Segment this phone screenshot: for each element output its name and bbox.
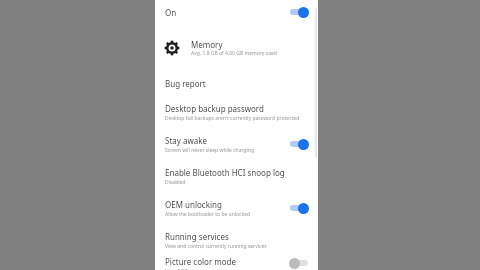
- staticText: Screen will never sleep while charging: [165, 147, 255, 154]
- other: Memory settings: [164, 40, 180, 56]
- button[interactable]: Picture color mode: [155, 256, 318, 270]
- button[interactable]: Running services: [155, 224, 318, 256]
- staticText: Desktop full backups aren't currently pa…: [165, 115, 300, 122]
- staticText: Picture color mode: [165, 256, 237, 267]
- staticText: Running services: [165, 231, 229, 242]
- staticText: OEM unlocking: [165, 199, 222, 210]
- button[interactable]: Toggle on: [288, 6, 310, 18]
- button[interactable]: Toggle on: [288, 138, 310, 150]
- staticText: Memory: [191, 39, 223, 50]
- button[interactable]: Toggle on: [288, 202, 310, 214]
- staticText: View and control currently running servi…: [165, 243, 267, 250]
- staticText: Disabled: [165, 179, 186, 186]
- button[interactable]: Toggle off: [288, 257, 310, 269]
- button[interactable]: On: [155, 0, 318, 22]
- button[interactable]: Stay awake: [155, 128, 318, 160]
- button[interactable]: Enable Bluetooth HCI snoop log: [155, 160, 318, 192]
- staticText: Allow the bootloader to be unlocked: [165, 211, 251, 218]
- staticText: Use sRGB: [165, 268, 188, 270]
- button[interactable]: Desktop backup password: [155, 96, 318, 128]
- button[interactable]: Memory settings: [155, 30, 318, 66]
- staticText: Bug report: [165, 78, 206, 89]
- staticText: Desktop backup password: [165, 103, 264, 114]
- staticText: On: [165, 7, 177, 18]
- staticText: Stay awake: [165, 135, 207, 146]
- staticText: Avg. 1.8 GB of 4.00 GB memory used: [191, 50, 277, 57]
- staticText: Enable Bluetooth HCI snoop log: [165, 167, 285, 178]
- button[interactable]: OEM unlocking: [155, 192, 318, 224]
- button[interactable]: Bug report: [155, 70, 318, 96]
